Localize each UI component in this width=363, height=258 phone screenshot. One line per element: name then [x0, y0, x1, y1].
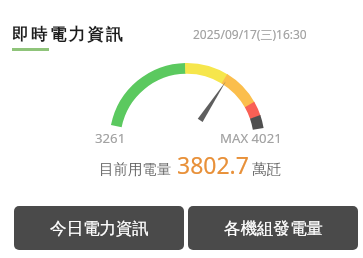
staticText: MAX 4021 — [220, 129, 282, 147]
staticText: 3261 — [95, 129, 126, 147]
staticText: 萬瓩 — [252, 160, 281, 178]
staticText: 各機組發電量 — [224, 218, 323, 239]
staticText: 今日電力資訊 — [50, 218, 149, 239]
staticText: 即時電力資訊 — [12, 24, 125, 45]
button[interactable]: 各機組發電量 — [188, 206, 358, 250]
staticText: 目前用電量 — [99, 160, 172, 178]
staticText: 2025/09/17(三)16:30 — [193, 26, 307, 42]
staticText: 3802.7 — [177, 149, 249, 180]
button[interactable]: 今日電力資訊 — [14, 206, 184, 250]
